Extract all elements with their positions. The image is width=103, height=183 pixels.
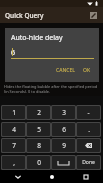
staticText: 9 <box>62 141 66 150</box>
staticText: (in Seconds). 0 to disable. <box>4 89 51 94</box>
staticText: 2 <box>37 108 41 117</box>
button[interactable]: Open overlay settings <box>88 10 98 20</box>
button[interactable]: 5 <box>27 123 50 136</box>
staticText: CANCEL <box>56 67 75 74</box>
button[interactable]: 3 <box>52 106 75 119</box>
button[interactable]: CANCEL <box>53 65 78 76</box>
button[interactable]: 0 <box>27 156 50 169</box>
button[interactable]: Done <box>77 156 100 169</box>
staticText: 6 <box>62 125 66 134</box>
staticText: Hides the floating bubble after the spec… <box>4 84 98 89</box>
button[interactable]: Hide keyboard <box>0 170 35 183</box>
button[interactable]: . <box>77 123 100 136</box>
staticText: Done <box>82 159 95 166</box>
button[interactable]: 1 <box>2 106 25 119</box>
staticText: - <box>87 108 90 117</box>
button[interactable]: , <box>2 156 25 169</box>
button[interactable]: OK <box>80 65 94 76</box>
staticText: 8 <box>37 141 41 150</box>
staticText: 5 <box>37 125 41 134</box>
staticText: , <box>13 158 15 167</box>
button[interactable]: 8 <box>27 139 50 152</box>
button[interactable]: 2 <box>27 106 50 119</box>
button[interactable]: 9 <box>52 139 75 152</box>
button[interactable]: 6 <box>52 123 75 136</box>
button[interactable]: Backspace <box>77 139 100 152</box>
staticText: Quick Query <box>5 11 44 20</box>
staticText: 3 <box>62 108 66 117</box>
staticText: . <box>88 125 90 134</box>
button[interactable]: - <box>77 106 100 119</box>
staticText: 0 <box>37 158 41 167</box>
staticText: 4 <box>12 125 16 134</box>
staticText: OK <box>83 67 91 74</box>
staticText: 1 <box>12 108 16 117</box>
staticText: 6 <box>11 48 16 58</box>
staticText: Auto-hide delay <box>11 33 63 43</box>
button[interactable]: 7 <box>2 139 25 152</box>
button[interactable]: Home <box>35 170 69 183</box>
button[interactable]: Recent apps <box>69 170 103 183</box>
staticText: 7 <box>12 141 16 150</box>
button[interactable]: Space <box>52 156 75 169</box>
button[interactable]: 4 <box>2 123 25 136</box>
